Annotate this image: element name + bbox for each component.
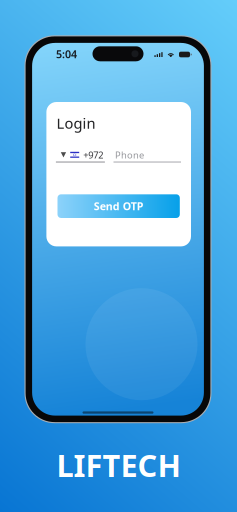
staticText: Send OTP <box>94 199 144 213</box>
staticText: +972 <box>83 149 103 161</box>
button[interactable]: Send OTP <box>57 194 180 218</box>
staticText: Login <box>56 113 95 133</box>
staticText: 5:04 <box>56 47 77 61</box>
staticText: Phone <box>115 149 144 161</box>
staticText: LIFTECH <box>56 445 180 485</box>
button[interactable]: +972 <box>56 146 105 162</box>
